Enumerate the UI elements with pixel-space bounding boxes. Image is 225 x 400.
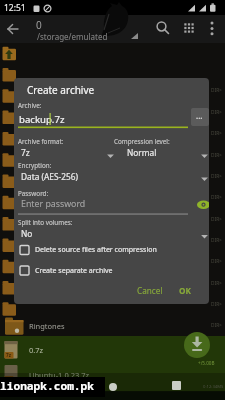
button[interactable] xyxy=(16,262,196,277)
button[interactable] xyxy=(172,381,181,390)
button[interactable]: ... xyxy=(191,108,209,126)
staticText: Split into volumes: xyxy=(18,218,73,227)
staticText: 7z xyxy=(6,376,11,382)
button[interactable] xyxy=(184,332,210,358)
staticText: DIR> xyxy=(211,173,222,180)
staticText: Cancel xyxy=(137,285,163,296)
staticText: backup.7z xyxy=(19,113,65,126)
staticText: Data (AES-256) xyxy=(21,171,78,182)
staticText: 12:51 xyxy=(4,2,26,14)
button[interactable] xyxy=(14,110,190,128)
staticText: DIR> xyxy=(211,322,222,329)
staticText: DIR> xyxy=(211,258,222,265)
button[interactable] xyxy=(0,15,225,43)
button[interactable] xyxy=(18,170,205,183)
staticText: DIR> xyxy=(211,130,222,137)
staticText: Password: xyxy=(18,189,49,198)
staticText: No xyxy=(21,228,33,239)
staticText: OK xyxy=(179,285,191,296)
staticText: 0.7z xyxy=(29,345,44,355)
staticText: /storage/emulated xyxy=(37,31,108,42)
button[interactable] xyxy=(16,242,196,257)
staticText: Ubuntu-1.0.23.7z xyxy=(29,370,90,380)
staticText: DIR> xyxy=(211,301,222,308)
staticText: 7z xyxy=(21,147,30,158)
staticText: DIR> xyxy=(211,194,222,201)
staticText: Create archive xyxy=(27,83,95,97)
staticText: Archive format: xyxy=(18,137,64,146)
staticText: lionapk.com.pk xyxy=(0,378,94,393)
staticText: 7z xyxy=(6,352,11,358)
staticText: DIR> xyxy=(211,237,222,244)
staticText: Compression level: xyxy=(114,137,170,146)
staticText: DIR> xyxy=(211,280,222,287)
staticText: ... xyxy=(196,110,203,121)
button[interactable] xyxy=(0,336,225,362)
staticText: DIR> xyxy=(211,152,222,159)
staticText: Create separate archive xyxy=(35,266,113,276)
button[interactable] xyxy=(0,362,225,387)
staticText: Ringtones xyxy=(29,321,65,331)
button[interactable] xyxy=(14,197,190,215)
button[interactable]: OK xyxy=(172,281,202,300)
button[interactable]: Cancel xyxy=(130,281,168,300)
button[interactable] xyxy=(124,147,205,160)
button[interactable] xyxy=(18,147,114,160)
staticText: Encryption: xyxy=(18,161,52,170)
staticText: DIR> xyxy=(211,216,222,223)
staticText: DIR> xyxy=(211,109,222,116)
staticText: +/5.00B xyxy=(198,360,215,366)
staticText: Archive: xyxy=(18,101,42,110)
staticText: 0:12:34MS xyxy=(203,384,224,390)
staticText: DIR> xyxy=(211,87,222,94)
button[interactable] xyxy=(18,227,205,240)
staticText: Normal xyxy=(127,147,157,158)
staticText: Enter password xyxy=(21,198,86,210)
staticText: 0 xyxy=(36,18,42,32)
staticText: Delete source files after compression xyxy=(35,245,157,255)
button[interactable] xyxy=(109,383,117,391)
